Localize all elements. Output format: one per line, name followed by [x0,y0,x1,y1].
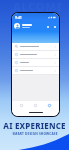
button[interactable]: Home [17,101,26,110]
button[interactable]: Notifications [45,24,50,29]
button[interactable] [12,67,59,74]
button[interactable]: Profile [14,23,20,29]
staticText: 9:41 [15,15,22,20]
staticText: ALCOME [13,0,64,14]
button[interactable] [12,43,59,50]
button[interactable] [12,59,59,66]
staticText: SMART DESIGN SHOWCASE [12,132,58,136]
button[interactable]: Explore [31,101,40,110]
button[interactable]: Profile [45,101,54,110]
button[interactable] [12,51,59,58]
staticText: AI EXPERIENCE [3,120,66,131]
button[interactable]: Settings [52,24,57,29]
